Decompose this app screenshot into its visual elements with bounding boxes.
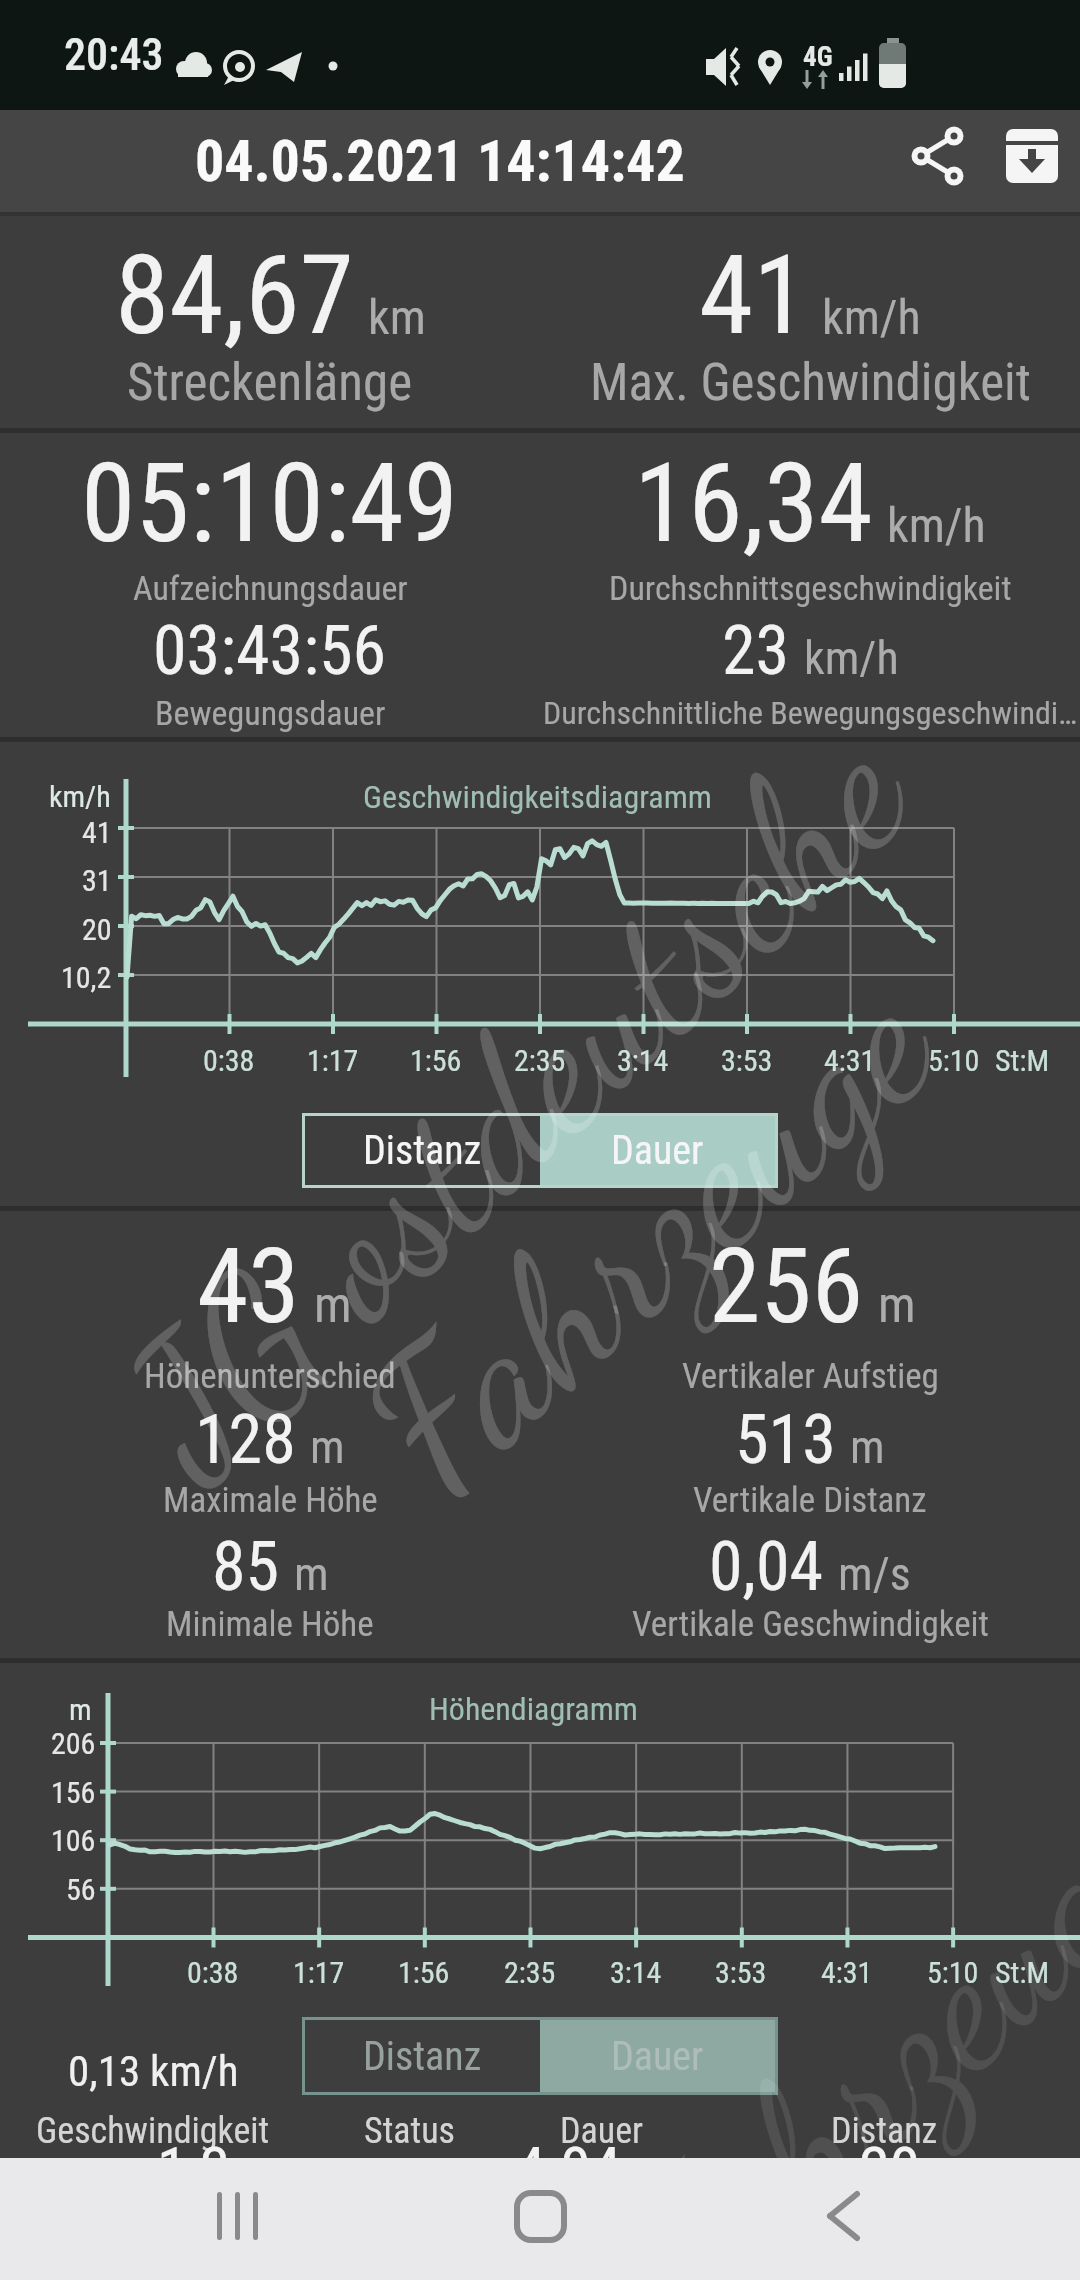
staticText: Vertikaler Aufstieg [682, 1356, 939, 1397]
staticText: 0,04 [709, 1527, 824, 1607]
staticText: Höhendiagramm [429, 1690, 638, 1728]
staticText: Dauer [611, 1127, 704, 1174]
staticText: 5:10 [927, 1955, 979, 1990]
staticText: m [310, 1420, 345, 1474]
staticText: Durchschnittliche Bewegungsgeschwindigke… [540, 694, 1080, 732]
staticText: Geschwindigkeit [36, 2110, 270, 2152]
staticText: St:M [995, 1043, 1050, 1078]
staticText: 4:31 [824, 1043, 876, 1078]
staticText: 1:56 [398, 1955, 450, 1990]
staticText: 23 [722, 611, 790, 691]
button[interactable]: Distanz [305, 1116, 540, 1185]
staticText: m [314, 1276, 352, 1335]
staticText: 16,34 [634, 439, 873, 568]
staticText: 0,13 km/h [68, 2046, 239, 2096]
button[interactable] [908, 125, 968, 187]
button[interactable] [505, 2188, 575, 2250]
staticText: JG ostdeutsche [82, 681, 951, 1519]
staticText: 3:53 [721, 1043, 773, 1078]
staticText: Fahrzeuge [572, 1749, 1080, 2280]
staticText: 1:56 [410, 1043, 462, 1078]
staticText: 84,67 [115, 231, 354, 360]
staticText: 03:43:56 [153, 611, 387, 691]
staticText: 10,2 [61, 960, 112, 995]
staticText: Bewegungsdauer [155, 693, 386, 733]
staticText: 256 [709, 1226, 864, 1348]
staticText: Dauer [611, 2033, 704, 2080]
staticText: 1,3 [157, 2133, 231, 2158]
button[interactable] [800, 2188, 880, 2250]
staticText: km [368, 289, 426, 345]
staticText: 0:38 [203, 1043, 255, 1078]
staticText: m [850, 1420, 885, 1474]
staticText: 4:04 [515, 2133, 622, 2158]
staticText: m [69, 1692, 92, 1727]
staticText: 1:17 [293, 1955, 345, 1990]
staticText: 206 [51, 1726, 96, 1761]
staticText: km/h [822, 289, 921, 345]
staticText: m [878, 1276, 916, 1335]
staticText: Streckenlänge [127, 353, 413, 413]
button[interactable] [1006, 129, 1058, 183]
staticText: Distanz [363, 1127, 482, 1174]
staticText: Minimale Höhe [166, 1604, 374, 1645]
staticText: Distanz [363, 2033, 482, 2080]
button[interactable]: Dauer [540, 1116, 775, 1185]
staticText: 20 [82, 912, 112, 947]
staticText: 156 [51, 1775, 96, 1810]
staticText: Aufzeichnungsdauer [133, 568, 408, 608]
staticText: km/h [804, 631, 899, 685]
staticText: m/s [838, 1547, 911, 1601]
staticText: m [294, 1547, 329, 1601]
staticText: 3:14 [610, 1955, 662, 1990]
staticText: 20 [859, 2133, 921, 2158]
staticText: km/h [887, 497, 986, 553]
staticText: 05:10:49 [81, 439, 459, 568]
staticText: Höhenunterschied [144, 1356, 396, 1397]
staticText: 31 [82, 863, 112, 898]
staticText: 85 [212, 1527, 280, 1607]
staticText: 3:53 [715, 1955, 767, 1990]
staticText: 4:31 [821, 1955, 873, 1990]
staticText: Fahrzeuge [322, 930, 975, 1540]
staticText: 41 [699, 231, 808, 360]
staticText: 2:35 [514, 1043, 566, 1078]
staticText: 5:10 [928, 1043, 980, 1078]
staticText: 43 [197, 1226, 300, 1348]
staticText: 4G [803, 41, 833, 73]
staticText: 2:35 [504, 1955, 556, 1990]
staticText: Durchschnittsgeschwindigkeit [609, 568, 1012, 608]
staticText: Dauer [560, 2110, 644, 2152]
staticText: Max. Geschwindigkeit [590, 353, 1031, 413]
staticText: 20:43 [64, 29, 164, 81]
staticText: Vertikale Distanz [693, 1480, 927, 1521]
staticText: 04.05.2021 14:14:42 [195, 127, 685, 195]
button[interactable]: Distanz [305, 2020, 540, 2092]
staticText: Geschwindigkeitsdiagramm [363, 778, 712, 816]
staticText: 3:14 [617, 1043, 669, 1078]
staticText: Vertikale Geschwindigkeit [632, 1604, 989, 1645]
staticText: 1:17 [307, 1043, 359, 1078]
staticText: 128 [195, 1400, 296, 1480]
staticText: 41 [82, 815, 112, 850]
staticText: St:M [995, 1955, 1050, 1990]
staticText: 513 [735, 1400, 836, 1480]
staticText: Maximale Höhe [163, 1480, 378, 1521]
staticText: 0:38 [187, 1955, 239, 1990]
staticText: 106 [51, 1823, 96, 1858]
staticText: Status [364, 2110, 456, 2152]
staticText: 56 [66, 1872, 96, 1907]
button[interactable] [195, 2188, 275, 2250]
staticText: Distanz [831, 2110, 938, 2152]
button[interactable]: Dauer [540, 2020, 775, 2092]
staticText: km/h [49, 779, 111, 814]
